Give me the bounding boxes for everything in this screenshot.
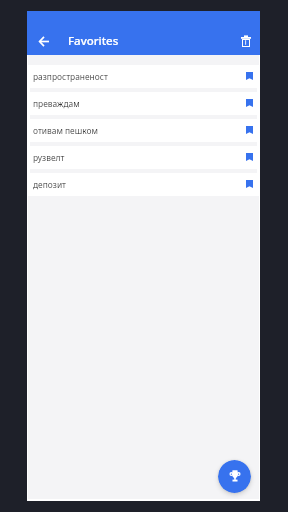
staticText: разпространеност	[33, 71, 108, 82]
button[interactable]: Bookmark	[241, 119, 257, 142]
button[interactable]: отивам пешком	[28, 119, 259, 142]
button[interactable]: Bookmark	[241, 146, 257, 169]
staticText: преваждам	[33, 98, 80, 109]
button[interactable]: депозит	[28, 173, 259, 196]
button[interactable]: Bookmark	[241, 65, 257, 88]
button[interactable]: Back	[30, 27, 58, 55]
button[interactable]: рузвелт	[28, 146, 259, 169]
button[interactable]: преваждам	[28, 92, 259, 115]
button[interactable]: Achievements	[218, 460, 251, 493]
staticText: депозит	[33, 179, 66, 190]
staticText: рузвелт	[33, 152, 65, 163]
staticText: отивам пешком	[33, 125, 98, 136]
button[interactable]: Delete	[232, 27, 260, 55]
button[interactable]: Bookmark	[241, 173, 257, 196]
staticText: Favorites	[68, 33, 119, 49]
button[interactable]: Bookmark	[241, 92, 257, 115]
button[interactable]: разпространеност	[28, 65, 259, 88]
